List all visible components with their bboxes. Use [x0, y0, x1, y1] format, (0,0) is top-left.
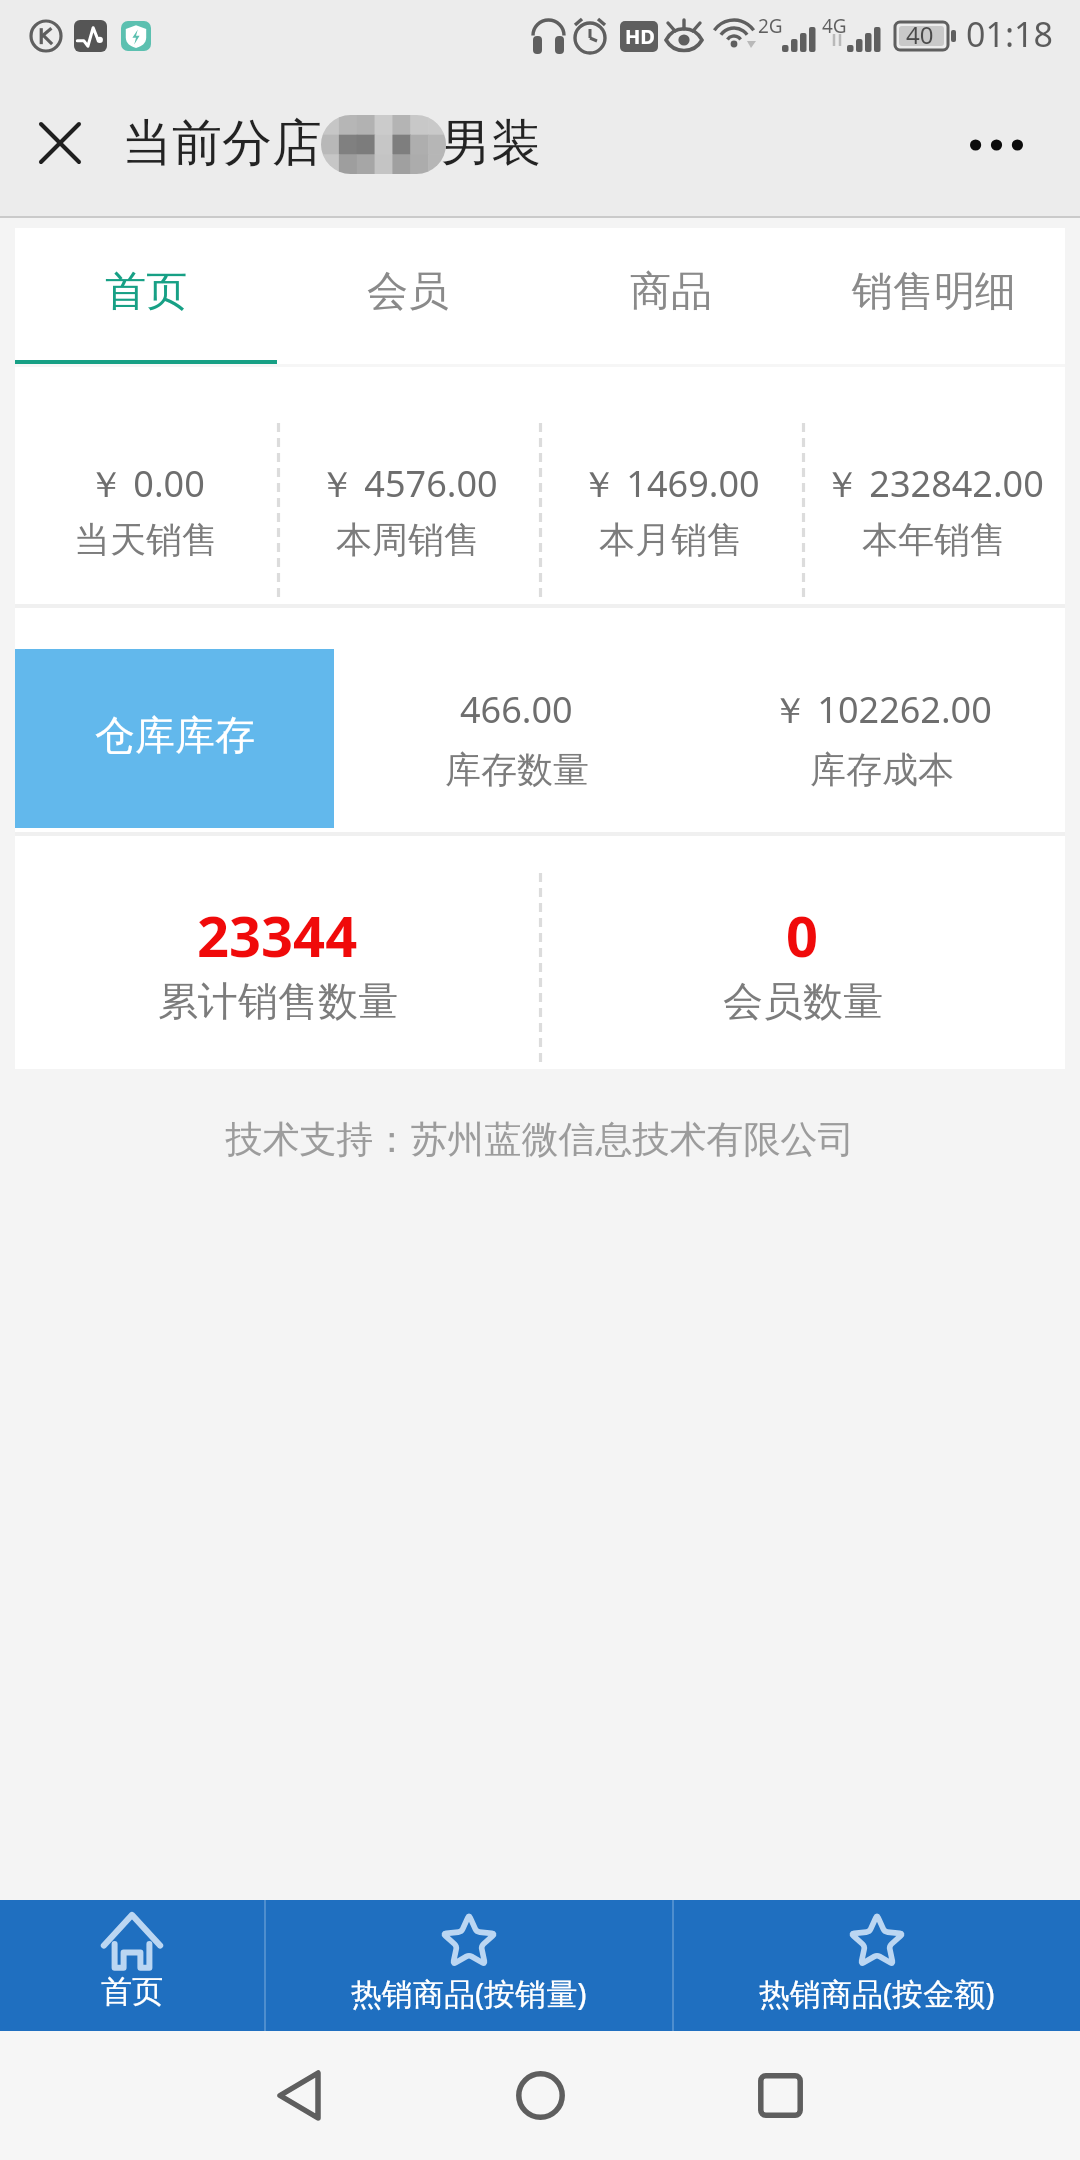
button[interactable]: 会员: [277, 228, 539, 360]
staticText: ￥ 102262.00: [772, 685, 992, 734]
staticText: 首页: [105, 266, 187, 318]
staticText: 首页: [101, 1972, 163, 2011]
button[interactable]: Back: [254, 2031, 344, 2160]
button[interactable]: ￥ 4576.00: [277, 367, 539, 604]
staticText: ￥ 1469.00: [581, 459, 760, 508]
button[interactable]: 0: [540, 836, 1065, 1069]
staticText: 库存数量: [445, 747, 589, 792]
staticText: 01:18: [966, 11, 1053, 57]
staticText: 本月销售: [599, 517, 743, 562]
button[interactable]: More options: [936, 72, 1056, 218]
button[interactable]: Recents: [735, 2031, 825, 2160]
button[interactable]: ￥ 1469.00: [539, 367, 802, 604]
button[interactable]: 466.00: [334, 608, 699, 832]
button[interactable]: 销售明细: [802, 228, 1065, 360]
button[interactable]: 商品: [539, 228, 802, 360]
button[interactable]: 仓库库存: [15, 649, 334, 828]
staticText: 热销商品(按销量): [351, 1972, 587, 2014]
staticText: ￥ 4576.00: [319, 459, 498, 508]
button[interactable]: 首页: [15, 228, 277, 360]
staticText: 本年销售: [862, 517, 1006, 562]
staticText: 男装: [441, 112, 541, 175]
staticText: 累计销售数量: [158, 976, 398, 1026]
button[interactable]: ￥ 0.00: [15, 367, 277, 604]
staticText: HD: [625, 23, 655, 50]
staticText: 40: [906, 18, 934, 51]
button[interactable]: 热销商品(按金额): [674, 1900, 1080, 2031]
staticText: 4G: [822, 13, 847, 39]
staticText: ￥ 232842.00: [824, 459, 1044, 508]
staticText: 商品: [630, 266, 712, 318]
button[interactable]: 23344: [15, 836, 540, 1069]
staticText: ￥ 0.00: [88, 459, 205, 508]
staticText: 仓库库存: [95, 710, 255, 760]
staticText: 技术支持：苏州蓝微信息技术有限公司: [0, 1116, 1080, 1163]
staticText: 会员数量: [723, 976, 883, 1026]
staticText: 库存成本: [810, 747, 954, 792]
button[interactable]: 热销商品(按销量): [266, 1900, 672, 2031]
staticText: 会员: [367, 266, 449, 318]
staticText: 23344: [197, 897, 358, 973]
staticText: 当天销售: [74, 517, 218, 562]
button[interactable]: Close: [20, 70, 100, 216]
button[interactable]: Home: [495, 2031, 585, 2160]
staticText: 0: [786, 897, 819, 973]
staticText: 2G: [758, 13, 783, 39]
staticText: 销售明细: [852, 266, 1016, 318]
staticText: 当前分店: [122, 112, 322, 175]
button[interactable]: ￥ 232842.00: [802, 367, 1065, 604]
button[interactable]: ￥ 102262.00: [699, 608, 1065, 832]
staticText: 本周销售: [336, 517, 480, 562]
staticText: 热销商品(按金额): [759, 1972, 995, 2014]
button[interactable]: 首页: [0, 1900, 264, 2031]
staticText: 466.00: [460, 685, 573, 734]
